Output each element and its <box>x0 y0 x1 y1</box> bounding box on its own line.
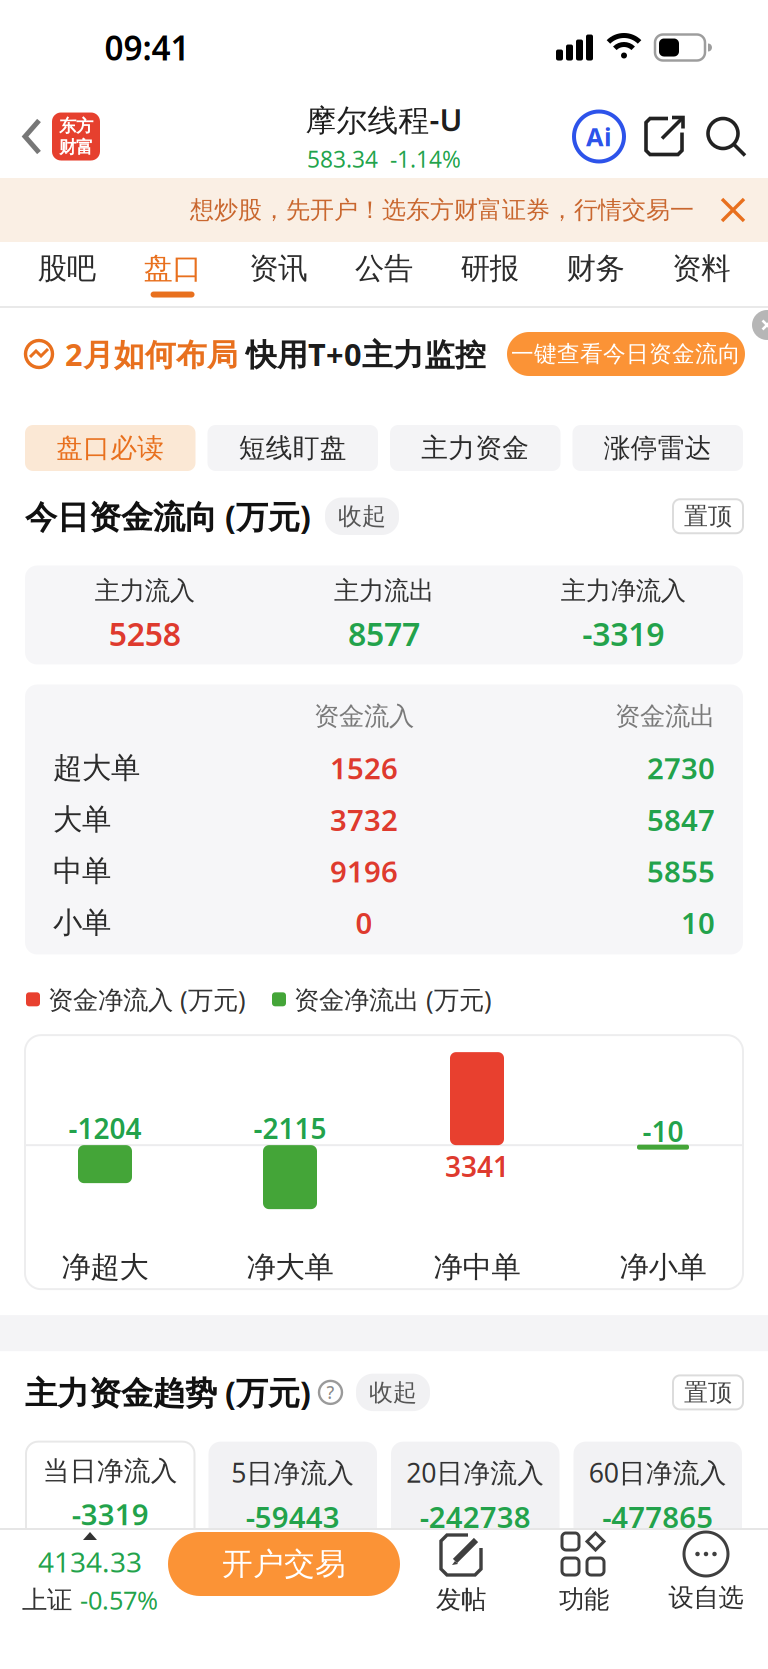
staticText: -2115 <box>253 1109 326 1147</box>
staticText: -477865 <box>602 1497 713 1536</box>
button[interactable]: 置顶 <box>673 1375 743 1409</box>
staticText: 盘口必读 <box>56 432 164 464</box>
staticText: 资料 <box>672 250 730 286</box>
button[interactable]: 说明 <box>311 1381 342 1404</box>
button[interactable]: 发帖 <box>0 1530 100 1613</box>
staticText: 9196 <box>330 852 398 891</box>
staticText: 超大单 <box>53 750 140 786</box>
staticText: 股吧 <box>38 250 96 286</box>
staticText: 功能 <box>559 1584 609 1615</box>
staticText: 涨停雷达 <box>604 432 712 464</box>
staticText: 财富 <box>59 136 93 158</box>
staticText: 主力资金趋势 (万元) <box>25 1371 311 1414</box>
staticText: 1526 <box>330 748 398 787</box>
staticText: 收起 <box>369 1378 417 1407</box>
staticText: 8577 <box>348 612 420 655</box>
staticText: 4134.33 <box>38 1543 142 1580</box>
staticText: -1.14% <box>390 144 461 174</box>
staticText: 快用T+0主力监控 <box>246 334 486 374</box>
staticText: 资讯 <box>249 250 307 286</box>
staticText: 中单 <box>53 853 111 889</box>
button[interactable]: 短线盯盘 <box>207 425 378 471</box>
button[interactable]: 资料 <box>648 250 754 297</box>
staticText: 5日净流入 <box>231 1455 354 1490</box>
staticText: 60日净流入 <box>589 1455 727 1490</box>
staticText: 资金流入 <box>314 701 414 732</box>
button[interactable]: 主力资金 <box>390 425 560 471</box>
button[interactable]: 当日净流入 <box>26 1442 194 1547</box>
staticText: 主力净流入 <box>561 575 686 606</box>
staticText: 盘口 <box>144 250 202 286</box>
staticText: 研报 <box>461 250 519 286</box>
staticText: 583.34 <box>307 144 378 174</box>
button[interactable]: 资讯 <box>225 250 331 297</box>
button[interactable]: 公告 <box>331 250 437 297</box>
staticText: 5258 <box>109 612 181 655</box>
staticText: 3341 <box>445 1147 509 1185</box>
staticText: Ai <box>586 120 612 153</box>
staticText: 想炒股，先开户！选东方财富证券，行情交易一 <box>190 195 694 225</box>
button[interactable]: Share <box>624 114 686 158</box>
staticText: 净超大 <box>61 1249 148 1285</box>
staticText: 3732 <box>330 800 398 839</box>
button[interactable]: 股吧 <box>14 250 120 297</box>
staticText: 公告 <box>355 250 413 286</box>
staticText: 净大单 <box>246 1249 333 1285</box>
staticText: ? <box>326 1381 334 1404</box>
staticText: 2月如何布局 <box>65 334 238 374</box>
staticText: 2730 <box>647 748 715 787</box>
staticText: 小单 <box>53 905 111 941</box>
button[interactable]: 开户交易 <box>0 1530 232 1594</box>
staticText: -3319 <box>72 1494 149 1533</box>
button[interactable]: Close <box>720 197 768 223</box>
staticText: 20日净流入 <box>406 1455 544 1490</box>
staticText: -0.57% <box>80 1583 158 1617</box>
button[interactable]: 收起 <box>356 1374 430 1411</box>
button[interactable]: Ai <box>574 111 624 161</box>
staticText: 主力流入 <box>95 575 195 606</box>
staticText: 净小单 <box>619 1249 706 1285</box>
staticText: 主力流出 <box>334 575 434 606</box>
button[interactable]: 盘口必读 <box>25 425 195 471</box>
button[interactable]: 财务 <box>543 250 648 297</box>
staticText: 当日净流入 <box>43 1455 178 1487</box>
button[interactable]: 收起 <box>325 497 399 535</box>
staticText: 0 <box>355 903 372 942</box>
staticText: 净中单 <box>433 1249 520 1285</box>
button[interactable]: 一键查看今日资金流向 <box>507 332 745 376</box>
button[interactable]: 5日净流入 <box>208 1442 377 1547</box>
button[interactable]: 20日净流入 <box>391 1442 559 1547</box>
staticText: 大单 <box>53 801 111 837</box>
staticText: 摩尔线程-U <box>305 99 462 140</box>
button[interactable]: 上证指数 <box>0 1530 150 1615</box>
button[interactable]: 功能 <box>0 1530 100 1613</box>
staticText: 今日资金流向 (万元) <box>25 495 311 537</box>
button[interactable]: 研报 <box>437 250 543 297</box>
staticText: 10 <box>681 903 715 942</box>
staticText: 短线盯盘 <box>239 432 347 464</box>
button[interactable]: 设自选 <box>0 1530 110 1611</box>
staticText: 主力资金 <box>421 432 529 464</box>
staticText: 09:41 <box>104 25 189 70</box>
staticText: 上证 <box>22 1584 72 1615</box>
staticText: -1204 <box>68 1109 141 1147</box>
staticText: 开户交易 <box>222 1545 346 1583</box>
button[interactable]: Back <box>0 118 42 154</box>
button[interactable]: Close <box>738 308 768 338</box>
staticText: 设自选 <box>668 1582 743 1613</box>
staticText: 资金净流入 (万元) <box>48 982 246 1016</box>
staticText: 收起 <box>338 501 386 531</box>
staticText: 5847 <box>647 800 715 839</box>
staticText: -242738 <box>420 1497 531 1536</box>
button[interactable]: 60日净流入 <box>573 1442 742 1547</box>
staticText: -10 <box>642 1112 683 1150</box>
staticText: 资金流出 <box>615 701 715 732</box>
button[interactable]: 涨停雷达 <box>572 425 743 471</box>
staticText: 东方 <box>59 115 93 136</box>
staticText: 置顶 <box>684 1378 732 1407</box>
button[interactable]: 东方财富 <box>42 112 100 160</box>
button[interactable]: 盘口 <box>120 250 225 297</box>
staticText: 5855 <box>647 852 715 891</box>
button[interactable]: 置顶 <box>673 499 743 533</box>
button[interactable]: Search <box>686 114 748 158</box>
